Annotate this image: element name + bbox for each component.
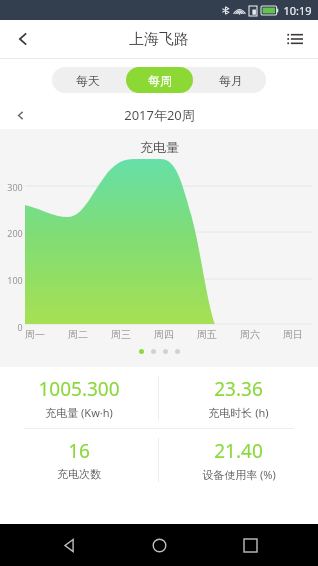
staticText: 充电量 [140, 139, 179, 155]
staticText: 充电量 (Kw·h) [45, 405, 113, 420]
staticText: 23.36 [214, 376, 263, 402]
staticText: 每月 [219, 73, 243, 88]
button[interactable]: Home [137, 524, 181, 566]
staticText: 每天 [76, 73, 100, 88]
button[interactable]: Back [0, 20, 46, 58]
button[interactable]: 23.36 [159, 367, 318, 428]
staticText: 周三 [111, 328, 131, 341]
staticText: 周五 [197, 328, 217, 341]
staticText: 周六 [240, 328, 260, 341]
staticText: 充电次数 [57, 467, 101, 481]
staticText: 100 [7, 274, 23, 284]
staticText: 16 [68, 438, 90, 464]
staticText: 周四 [154, 328, 174, 341]
button[interactable]: Recents [228, 524, 272, 566]
button[interactable]: 21.40 [159, 429, 318, 490]
button[interactable]: Menu [272, 20, 318, 58]
staticText: 300 [7, 181, 23, 191]
staticText: 充电时长 (h) [208, 405, 269, 420]
staticText: 200 [7, 227, 23, 237]
staticText: 1005.300 [38, 376, 120, 402]
button[interactable]: 1005.300 [0, 367, 158, 428]
staticText: 0 [17, 321, 23, 331]
button[interactable]: Previous week [0, 101, 40, 129]
button[interactable]: 每天 [54, 67, 122, 93]
staticText: 每周 [148, 73, 172, 88]
button[interactable]: 每周 [126, 67, 193, 93]
staticText: 周日 [283, 328, 303, 341]
staticText: 21.40 [214, 438, 263, 464]
button[interactable]: 16 [0, 429, 158, 490]
staticText: 10:19 [283, 3, 312, 18]
button[interactable]: 每月 [197, 67, 264, 93]
staticText: 上海飞路 [129, 30, 189, 49]
staticText: 2017年20周 [124, 106, 195, 124]
staticText: 设备使用率 (%) [202, 467, 276, 482]
staticText: 周二 [68, 328, 88, 341]
button[interactable]: Back [47, 524, 91, 566]
staticText: 周一 [25, 328, 45, 341]
